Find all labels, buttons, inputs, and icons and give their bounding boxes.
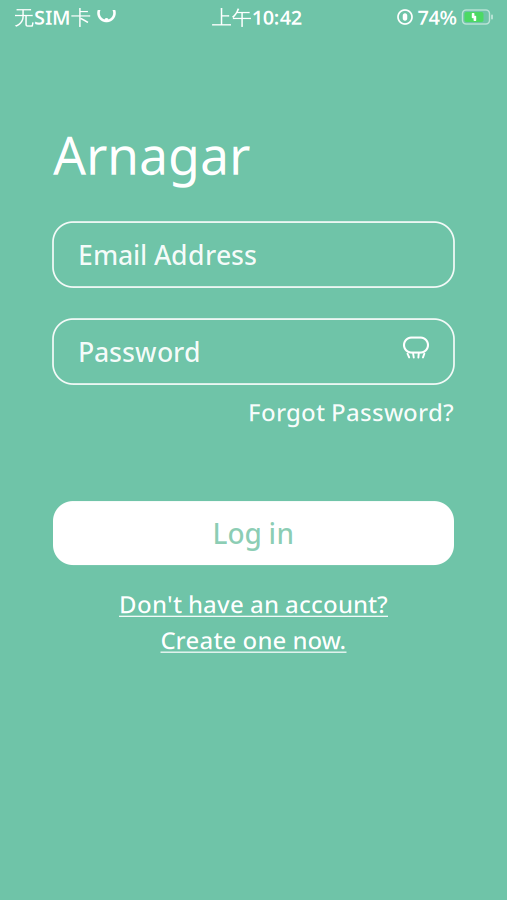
button[interactable]: Don't have an account?: [0, 586, 507, 658]
staticText: 上午10:42: [212, 4, 302, 30]
staticText: Create one now.: [160, 624, 346, 656]
staticText: Log in: [212, 514, 294, 552]
staticText: 74%: [417, 4, 457, 30]
button[interactable]: Forgot Password?: [0, 396, 507, 428]
staticText: 无SIM卡: [14, 4, 91, 30]
staticText: Don't have an account?: [119, 588, 388, 620]
staticText: Forgot Password?: [248, 396, 454, 428]
staticText: Password: [78, 334, 201, 369]
staticText: Arnagar: [53, 120, 250, 189]
button[interactable]: Log in: [0, 501, 507, 565]
staticText: Email Address: [78, 237, 257, 272]
